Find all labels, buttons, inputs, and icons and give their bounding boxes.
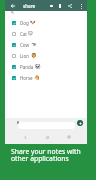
staticText: Horse <box>20 75 33 81</box>
button[interactable]: Copy <box>57 3 63 9</box>
button[interactable]: Cow <box>5 39 87 50</box>
button[interactable]: Menu <box>14 119 21 126</box>
button[interactable]: Panda <box>5 61 87 72</box>
button[interactable]: Dog <box>5 17 87 28</box>
button[interactable]: More options <box>78 3 84 9</box>
staticText: 🐼 <box>35 64 41 69</box>
button[interactable]: Cat <box>5 28 87 39</box>
button[interactable]: Horse <box>5 72 87 83</box>
staticText: 🦁 <box>31 53 37 58</box>
staticText: 🐴 <box>34 75 40 80</box>
button[interactable]: Recents <box>66 134 72 140</box>
button[interactable]: Add note <box>77 120 83 126</box>
staticText: Share your notes with other applications <box>11 147 81 163</box>
staticText: 🐶 <box>30 20 36 25</box>
button[interactable]: Home <box>44 134 50 140</box>
staticText: share <box>23 3 36 9</box>
staticText: Lion <box>20 53 30 59</box>
button[interactable]: Lion <box>5 50 87 61</box>
staticText: Dog <box>20 20 29 26</box>
staticText: Cat <box>20 31 27 37</box>
staticText: Cow <box>20 42 30 48</box>
staticText: Panda <box>20 64 34 70</box>
staticText: 🐱 <box>28 31 33 36</box>
staticText: 🐄 <box>31 42 37 47</box>
button[interactable]: System back <box>22 134 28 140</box>
button[interactable] <box>18 122 75 129</box>
button[interactable]: Back <box>7 0 18 11</box>
button[interactable]: Share <box>67 3 73 9</box>
button[interactable]: Select all <box>48 3 54 9</box>
